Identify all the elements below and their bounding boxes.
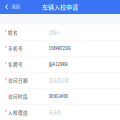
- staticText: 请选择日期: [48, 77, 68, 83]
- staticText: 访问时段: [8, 93, 28, 99]
- staticText: 车牌号: [8, 61, 23, 67]
- staticText: 浙A123456: [48, 61, 67, 67]
- staticText: 返回: [11, 4, 19, 10]
- staticText: 姓名: [8, 29, 18, 35]
- staticText: 手机号: [8, 45, 23, 51]
- button[interactable]: 返回: [0, 0, 22, 14]
- staticText: 访问日期: [8, 77, 28, 83]
- staticText: 请输入: [48, 29, 60, 35]
- staticText: 15904872316: [48, 45, 70, 51]
- staticText: 00:00-24:00: [48, 93, 67, 99]
- staticText: 车辆入校申请: [42, 2, 78, 11]
- staticText: *: [5, 45, 7, 52]
- staticText: *: [5, 61, 7, 68]
- button[interactable]: *: [0, 56, 120, 72]
- staticText: *: [5, 77, 7, 84]
- staticText: *: [5, 109, 7, 116]
- button[interactable]: 访问时段: [0, 88, 120, 104]
- staticText: *: [5, 29, 7, 36]
- button[interactable]: *: [0, 40, 120, 56]
- staticText: 未选择: [48, 109, 60, 115]
- button[interactable]: *: [0, 72, 120, 88]
- button[interactable]: *: [0, 24, 120, 40]
- button[interactable]: *: [0, 104, 120, 120]
- staticText: 入校理由: [8, 109, 28, 115]
